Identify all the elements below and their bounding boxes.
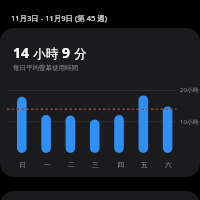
- staticText: 每日平均螢幕使用時間: [13, 64, 78, 72]
- staticText: 二: [68, 160, 75, 169]
- staticText: 14: [13, 43, 30, 62]
- staticText: 小時: [30, 45, 62, 62]
- staticText: 三: [92, 160, 99, 169]
- button[interactable]: [0, 191, 200, 200]
- staticText: 五: [141, 160, 148, 169]
- staticText: 20小時: [180, 86, 199, 94]
- button[interactable]: [0, 28, 200, 177]
- staticText: 11月3日 - 11月9日 (第 45 週): [11, 13, 107, 23]
- staticText: 六: [165, 160, 172, 169]
- staticText: 一: [44, 160, 51, 169]
- staticText: 10小時: [180, 118, 199, 126]
- staticText: 四: [117, 160, 124, 169]
- staticText: 分: [71, 45, 87, 62]
- staticText: 9: [62, 43, 71, 62]
- staticText: 日: [19, 160, 26, 169]
